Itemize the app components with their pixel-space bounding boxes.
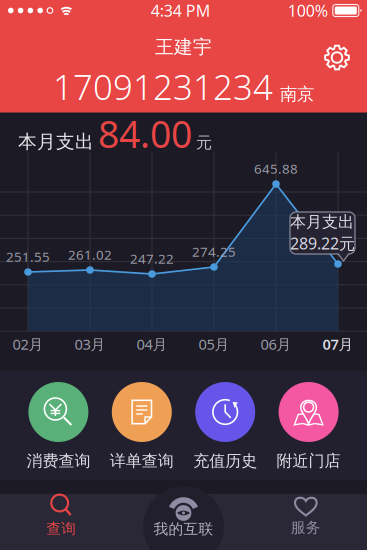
staticText: 充值历史 bbox=[193, 451, 257, 471]
button[interactable]: 附近门店 bbox=[267, 382, 350, 471]
staticText: 02月 bbox=[12, 334, 43, 354]
staticText: 南京 bbox=[280, 83, 314, 105]
button[interactable]: 我的互联 bbox=[122, 480, 245, 550]
staticText: 251.55 bbox=[6, 248, 50, 265]
staticText: 消费查询 bbox=[26, 451, 90, 471]
staticText: 261.02 bbox=[68, 246, 112, 263]
staticText: 本月支出 bbox=[18, 130, 94, 153]
staticText: 服务 bbox=[291, 518, 321, 536]
staticText: 05月 bbox=[198, 334, 229, 354]
staticText: 4:34 PM bbox=[151, 0, 211, 21]
staticText: 247.22 bbox=[130, 250, 174, 267]
staticText: 王建宇 bbox=[155, 35, 212, 58]
staticText: 84.00 bbox=[98, 109, 192, 158]
staticText: 07月 bbox=[322, 334, 353, 354]
staticText: 本月支出 bbox=[290, 212, 354, 232]
staticText: 17091231234 bbox=[53, 63, 273, 109]
button[interactable]: 详单查询 bbox=[100, 382, 183, 471]
button[interactable]: 充值历史 bbox=[183, 382, 267, 471]
staticText: 详单查询 bbox=[110, 451, 174, 471]
staticText: 04月 bbox=[136, 334, 167, 354]
staticText: 289.22元 bbox=[290, 233, 355, 254]
staticText: 查询 bbox=[46, 519, 76, 537]
staticText: 元 bbox=[196, 133, 212, 152]
staticText: 附近门店 bbox=[277, 451, 341, 471]
staticText: 274.25 bbox=[192, 243, 236, 260]
button[interactable]: 消费查询 bbox=[17, 382, 100, 471]
staticText: 03月 bbox=[74, 334, 105, 354]
staticText: 645.88 bbox=[254, 160, 298, 177]
staticText: 100% bbox=[288, 0, 328, 21]
button[interactable]: 服务 bbox=[245, 487, 367, 543]
staticText: 06月 bbox=[260, 334, 291, 354]
staticText: 我的互联 bbox=[153, 520, 213, 538]
button[interactable]: 查询 bbox=[0, 487, 122, 543]
button[interactable]: Settings bbox=[315, 35, 359, 79]
